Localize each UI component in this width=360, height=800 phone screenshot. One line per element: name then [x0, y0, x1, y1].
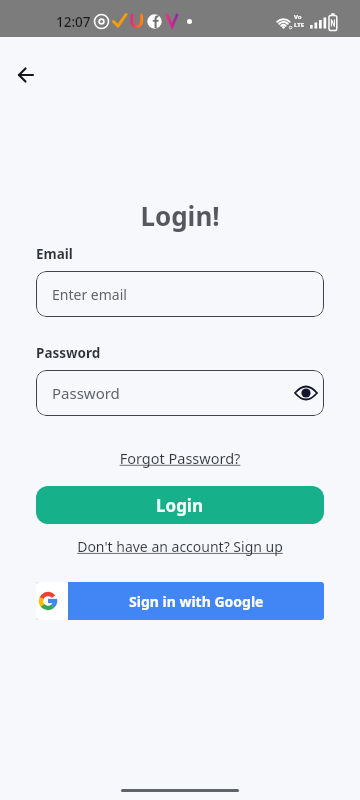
staticText: Login — [156, 494, 204, 517]
staticText: Vo — [294, 13, 302, 21]
button[interactable]: Password — [36, 370, 324, 416]
staticText: Email — [36, 245, 73, 263]
button[interactable]: Sign in with Google — [36, 582, 324, 620]
staticText: Sign in with Google — [129, 592, 264, 611]
staticText: Password — [36, 344, 101, 362]
staticText: 12:07 — [56, 13, 91, 31]
staticText: Enter email — [52, 285, 127, 304]
staticText: Password — [52, 383, 120, 403]
button[interactable]: Login — [36, 486, 324, 524]
button[interactable] — [14, 63, 42, 91]
staticText: Login! — [0, 198, 360, 233]
button[interactable] — [292, 379, 320, 407]
button[interactable]: Enter email — [36, 271, 324, 317]
staticText: LTE — [294, 21, 305, 29]
button[interactable]: Forgot Password? — [0, 448, 360, 468]
button[interactable]: Don't have an account? Sign up — [0, 537, 360, 556]
